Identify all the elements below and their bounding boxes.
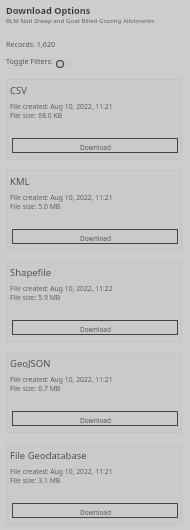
button[interactable]: CSV <box>6 79 182 160</box>
button[interactable]: Download <box>12 411 178 426</box>
staticText: File size: 5.0 MB <box>10 202 61 211</box>
staticText: File created: Aug 10, 2022, 11:21 <box>10 375 113 384</box>
button[interactable]: KML <box>6 170 182 251</box>
staticText: Download <box>80 416 111 425</box>
staticText: KML <box>10 175 30 188</box>
staticText: BLM Natl Sheep and Goat Billed Grazing A… <box>6 16 155 24</box>
button[interactable]: Download <box>12 320 178 335</box>
button[interactable]: Download <box>12 503 178 518</box>
staticText: File created: Aug 10, 2022, 11:22 <box>10 284 113 293</box>
button[interactable]: GeoJSON <box>6 352 182 433</box>
staticText: CSV <box>10 84 27 97</box>
button[interactable]: Toggle Filters <box>56 60 73 68</box>
staticText: File size: 5.9 MB <box>10 293 61 302</box>
staticText: GeoJSON <box>10 357 51 370</box>
staticText: File Geodatabase <box>10 449 87 462</box>
staticText: File size: 68.0 KB <box>10 111 63 120</box>
button[interactable]: File Geodatabase <box>6 444 182 525</box>
staticText: Download <box>80 234 111 243</box>
staticText: File created: Aug 10, 2022, 11:21 <box>10 467 113 476</box>
staticText: File created: Aug 10, 2022, 11:21 <box>10 102 113 111</box>
staticText: File size: 3.1 MB <box>10 476 61 485</box>
button[interactable]: Download <box>12 138 178 153</box>
staticText: Shapefile <box>10 266 52 279</box>
staticText: Download <box>80 143 111 152</box>
staticText: Toggle Filters: <box>6 56 53 66</box>
staticText: Download <box>80 325 111 334</box>
staticText: File created: Aug 10, 2022, 11:21 <box>10 193 113 202</box>
button[interactable]: Download <box>12 229 178 244</box>
button[interactable]: Shapefile <box>6 261 182 342</box>
staticText: File size: 6.7 MB <box>10 384 61 393</box>
staticText: Records: 1,620 <box>6 39 56 49</box>
staticText: Download <box>80 508 111 517</box>
staticText: Download Options <box>6 4 91 17</box>
